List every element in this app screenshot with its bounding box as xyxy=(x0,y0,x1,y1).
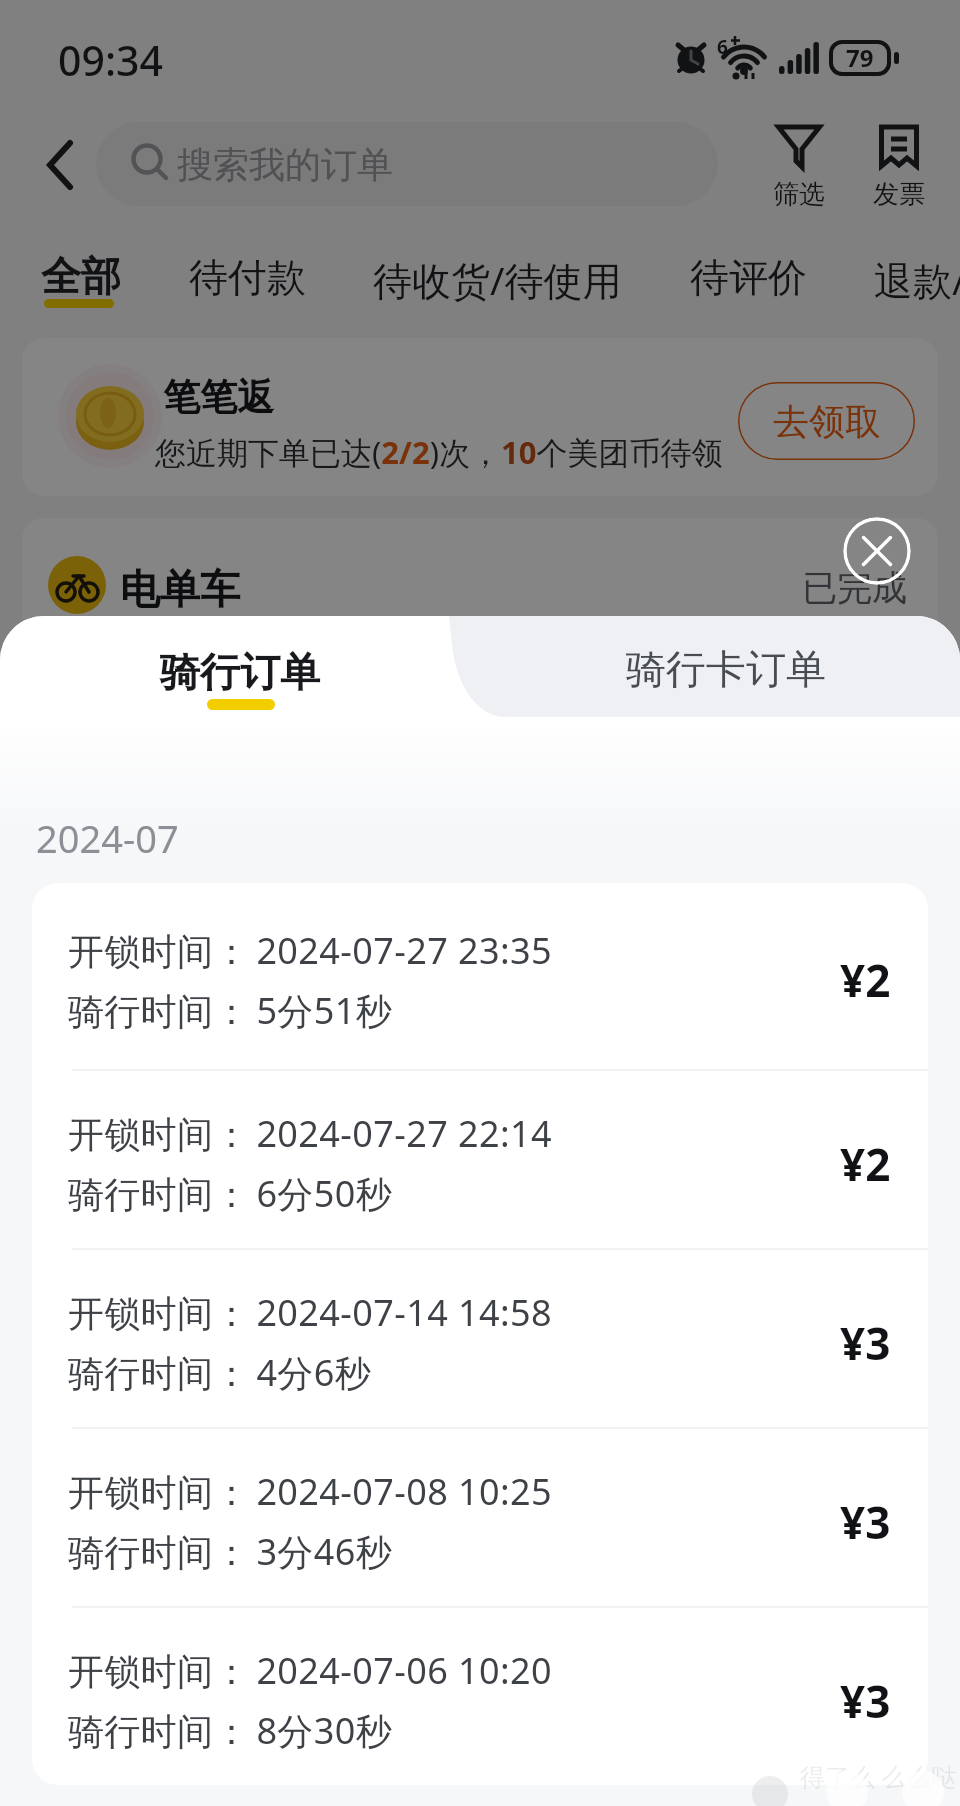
staticText: 得了么 么么哒 xyxy=(800,1759,957,1793)
button[interactable]: 待收货/待使用 xyxy=(373,253,622,306)
staticText: 筛选 xyxy=(773,178,825,211)
staticText: 6 xyxy=(717,34,728,60)
staticText: 79 xyxy=(846,41,874,74)
button[interactable]: 笔笔返 xyxy=(22,338,938,496)
button[interactable]: 筛选 xyxy=(753,124,845,211)
staticText: ¥3 xyxy=(840,1671,891,1731)
staticText: 电单车 xyxy=(120,564,240,614)
button[interactable]: 开锁时间： 2024-07-27 22:14 xyxy=(32,1071,928,1248)
button[interactable]: 发票 xyxy=(853,124,945,211)
staticText: 开锁时间： 2024-07-08 10:25 xyxy=(68,1467,553,1516)
staticText: ¥2 xyxy=(840,1134,891,1194)
button[interactable]: 待评价 xyxy=(690,253,807,302)
staticText: 去领取 xyxy=(773,399,881,444)
staticText: ¥3 xyxy=(840,1492,891,1552)
button[interactable]: 退款/ xyxy=(874,253,960,306)
button[interactable]: 去领取 xyxy=(738,382,915,460)
staticText: 您近期下单已达(2/2)次，10个美团币待领 xyxy=(155,431,723,473)
staticText: ¥2 xyxy=(840,950,891,1010)
staticText: 骑行时间： 5分51秒 xyxy=(68,986,393,1035)
staticText: 2024-07 xyxy=(36,812,179,864)
staticText: 全部 xyxy=(41,251,121,301)
staticText: 骑行时间： 8分30秒 xyxy=(68,1706,393,1755)
staticText: 发票 xyxy=(873,178,925,211)
staticText: 骑行卡订单 xyxy=(626,644,826,694)
staticText: 骑行时间： 6分50秒 xyxy=(68,1169,393,1218)
staticText: 骑行时间： 4分6秒 xyxy=(68,1348,372,1397)
staticText: 开锁时间： 2024-07-14 14:58 xyxy=(68,1288,553,1337)
button[interactable]: 骑行订单 xyxy=(0,616,449,717)
button[interactable]: 开锁时间： 2024-07-14 14:58 xyxy=(32,1250,928,1427)
button[interactable]: 开锁时间： 2024-07-08 10:25 xyxy=(32,1429,928,1606)
button[interactable]: 搜索我的订单 xyxy=(96,122,718,206)
staticText: 骑行时间： 3分46秒 xyxy=(68,1527,393,1576)
button[interactable]: 开锁时间： 2024-07-06 10:20 xyxy=(32,1608,928,1785)
button[interactable]: Close xyxy=(843,517,911,585)
button[interactable]: 待付款 xyxy=(189,253,306,302)
staticText: 已完成 xyxy=(802,566,907,610)
staticText: ¥3 xyxy=(840,1313,891,1373)
button[interactable]: 骑行卡订单 xyxy=(449,616,960,717)
staticText: 开锁时间： 2024-07-27 22:14 xyxy=(68,1109,553,1158)
staticText: 搜索我的订单 xyxy=(177,142,393,187)
staticText: 开锁时间： 2024-07-27 23:35 xyxy=(68,926,553,975)
staticText: 开锁时间： 2024-07-06 10:20 xyxy=(68,1646,553,1695)
button[interactable]: 开锁时间： 2024-07-27 23:35 xyxy=(32,883,928,1069)
staticText: 骑行订单 xyxy=(160,647,320,697)
button[interactable]: 全部 xyxy=(20,250,140,326)
staticText: 09:34 xyxy=(58,32,163,88)
staticText: 笔笔返 xyxy=(163,374,274,421)
button[interactable]: 电单车 xyxy=(22,518,938,790)
